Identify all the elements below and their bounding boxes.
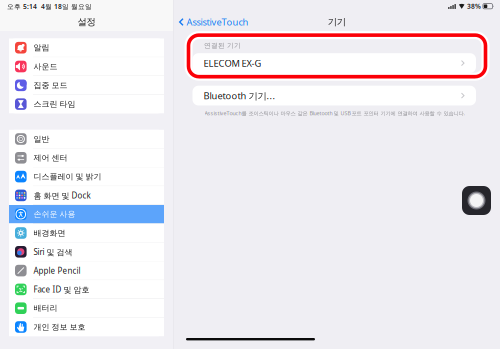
button[interactable]: AssistiveTouch [462, 186, 491, 215]
button[interactable]: Apple Pencil [9, 261, 164, 280]
staticText: 배터리 [33, 303, 57, 313]
staticText: Apple Pencil [33, 265, 80, 276]
staticText: ELECOM EX-G [203, 57, 261, 69]
staticText: 기기 [328, 16, 346, 28]
staticText: 설정 [77, 16, 95, 28]
button[interactable]: 홈 화면 및 Dock [9, 186, 164, 205]
button[interactable]: ELECOM EX-G [192, 53, 476, 73]
staticText: 4월 18일 월요일 [41, 2, 92, 11]
staticText: 홈 화면 및 Dock [33, 190, 90, 201]
button[interactable]: Siri 및 검색 [9, 243, 164, 261]
staticText: 디스플레이 및 밝기 [33, 172, 101, 181]
button[interactable]: 알림 [9, 38, 164, 57]
staticText: Bluetooth 기기... [203, 89, 275, 102]
button[interactable]: 집중 모드 [9, 76, 164, 94]
staticText: 스크린 타임 [33, 99, 75, 109]
staticText: Face ID 및 암호 [33, 284, 89, 295]
staticText: 일반 [33, 134, 49, 144]
button[interactable]: 손쉬운 사용 [9, 205, 164, 223]
button[interactable]: 개인 정보 보호 [9, 318, 164, 336]
button[interactable]: 일반 [9, 130, 164, 148]
button[interactable]: 디스플레이 및 밝기 [9, 167, 164, 186]
button[interactable]: Bluetooth 기기... [192, 86, 476, 105]
staticText: AssistiveTouch [186, 16, 248, 28]
button[interactable]: 사운드 [9, 57, 164, 76]
staticText: Siri 및 검색 [33, 246, 72, 257]
button[interactable]: 제어 센터 [9, 149, 164, 167]
staticText: 배경화면 [33, 228, 65, 238]
staticText: 알림 [33, 43, 49, 53]
staticText: 연결된 기기 [204, 41, 241, 50]
staticText: AssistiveTouch를 조이스틱이나 마우스 같은 Bluetooth … [204, 110, 464, 117]
staticText: 집중 모드 [33, 80, 67, 90]
button[interactable]: 배터리 [9, 299, 164, 317]
staticText: 사운드 [33, 62, 57, 71]
staticText: 개인 정보 보호 [33, 322, 85, 332]
staticText: 제어 센터 [33, 153, 67, 163]
button[interactable]: 스크린 타임 [9, 95, 164, 113]
staticText: 손쉬운 사용 [33, 209, 75, 219]
button[interactable]: 배경화면 [9, 224, 164, 242]
button[interactable]: Face ID 및 암호 [9, 280, 164, 299]
button[interactable]: AssistiveTouch [173, 14, 248, 30]
staticText: 오후 5:14 [7, 2, 37, 11]
staticText: 38% [467, 2, 481, 11]
